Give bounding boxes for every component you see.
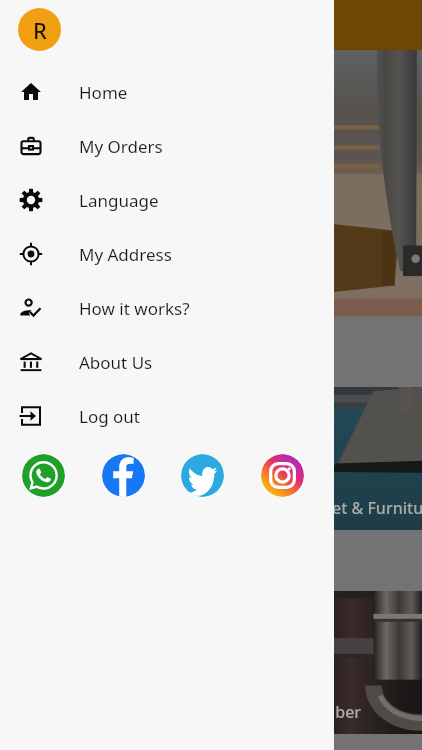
button[interactable]: R — [18, 8, 61, 51]
button[interactable]: My Address — [0, 227, 334, 281]
staticText: Carpet & Furniture — [296, 497, 422, 519]
button[interactable]: WhatsApp — [22, 454, 65, 497]
button[interactable]: About Us — [0, 335, 334, 389]
staticText: Plumber — [296, 701, 362, 723]
staticText: About Us — [79, 351, 153, 374]
staticText: My Orders — [79, 135, 163, 158]
button[interactable]: How it works? — [0, 281, 334, 335]
button[interactable]: My Orders — [0, 119, 334, 173]
button[interactable]: Log out — [0, 389, 334, 443]
button[interactable]: Facebook — [102, 454, 145, 497]
staticText: R — [33, 15, 47, 45]
button[interactable]: Instagram — [261, 454, 304, 497]
staticText: My Address — [79, 243, 172, 266]
staticText: Language — [79, 189, 159, 212]
button[interactable]: Home — [0, 65, 334, 119]
staticText: How it works? — [79, 297, 190, 320]
button[interactable]: Language — [0, 173, 334, 227]
staticText: Home — [79, 81, 128, 104]
staticText: Log out — [79, 405, 140, 428]
button[interactable]: Twitter — [181, 454, 224, 497]
